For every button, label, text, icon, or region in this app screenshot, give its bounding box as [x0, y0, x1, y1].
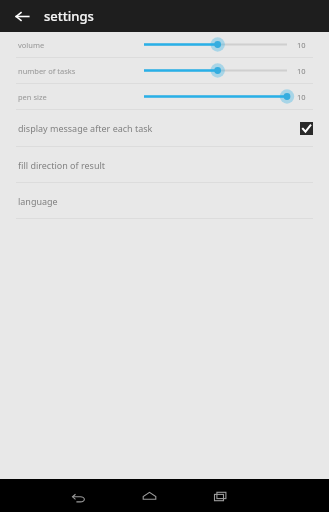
button[interactable]: Back [8, 2, 36, 30]
button[interactable]: fill direction of result [0, 147, 329, 182]
button[interactable]: Recent apps [204, 480, 236, 512]
staticText: display message after each task [18, 122, 300, 134]
staticText: settings [44, 7, 94, 25]
staticText: language [18, 195, 58, 207]
staticText: 10 [297, 92, 313, 102]
staticText: fill direction of result [18, 159, 106, 171]
other: Checked [300, 122, 313, 135]
staticText: 10 [297, 66, 313, 76]
button[interactable]: pen size [0, 84, 329, 109]
button[interactable]: Home [133, 480, 165, 512]
staticText: volume [18, 40, 140, 50]
staticText: number of tasks [18, 66, 140, 76]
staticText: pen size [18, 92, 140, 102]
button[interactable]: number of tasks [0, 58, 329, 83]
button[interactable]: volume [0, 32, 329, 57]
button[interactable]: language [0, 183, 329, 218]
button[interactable]: display message after each task [0, 110, 329, 146]
staticText: 10 [297, 40, 313, 50]
button[interactable]: Back [62, 480, 94, 512]
